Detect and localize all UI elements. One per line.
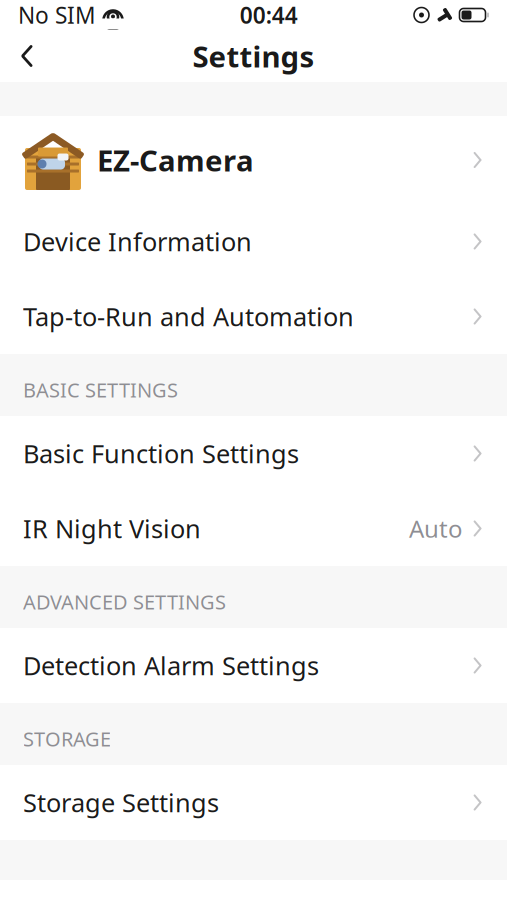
button[interactable]: Storage Settings [0, 765, 507, 840]
staticText: No SIM [18, 0, 96, 30]
staticText: STORAGE [23, 725, 111, 752]
staticText: EZ-Camera [97, 140, 254, 179]
staticText: BASIC SETTINGS [23, 376, 178, 403]
button[interactable]: Tap-to-Run and Automation [0, 279, 507, 354]
button[interactable]: Back [0, 30, 54, 82]
staticText: Basic Function Settings [23, 437, 299, 470]
staticText: Tap-to-Run and Automation [23, 300, 354, 333]
button[interactable]: EZ-Camera [0, 116, 507, 204]
staticText: Device Information [23, 225, 252, 258]
staticText: ADVANCED SETTINGS [23, 588, 226, 615]
button[interactable]: Detection Alarm Settings [0, 628, 507, 703]
staticText: IR Night Vision [23, 512, 201, 545]
staticText: Detection Alarm Settings [23, 649, 319, 682]
staticText: Auto [409, 513, 463, 544]
staticText: 00:44 [240, 0, 298, 30]
button[interactable]: IR Night Vision [0, 491, 507, 566]
button[interactable]: Basic Function Settings [0, 416, 507, 491]
staticText: Storage Settings [23, 786, 219, 819]
button[interactable]: Device Information [0, 204, 507, 279]
staticText: Settings [192, 36, 314, 75]
